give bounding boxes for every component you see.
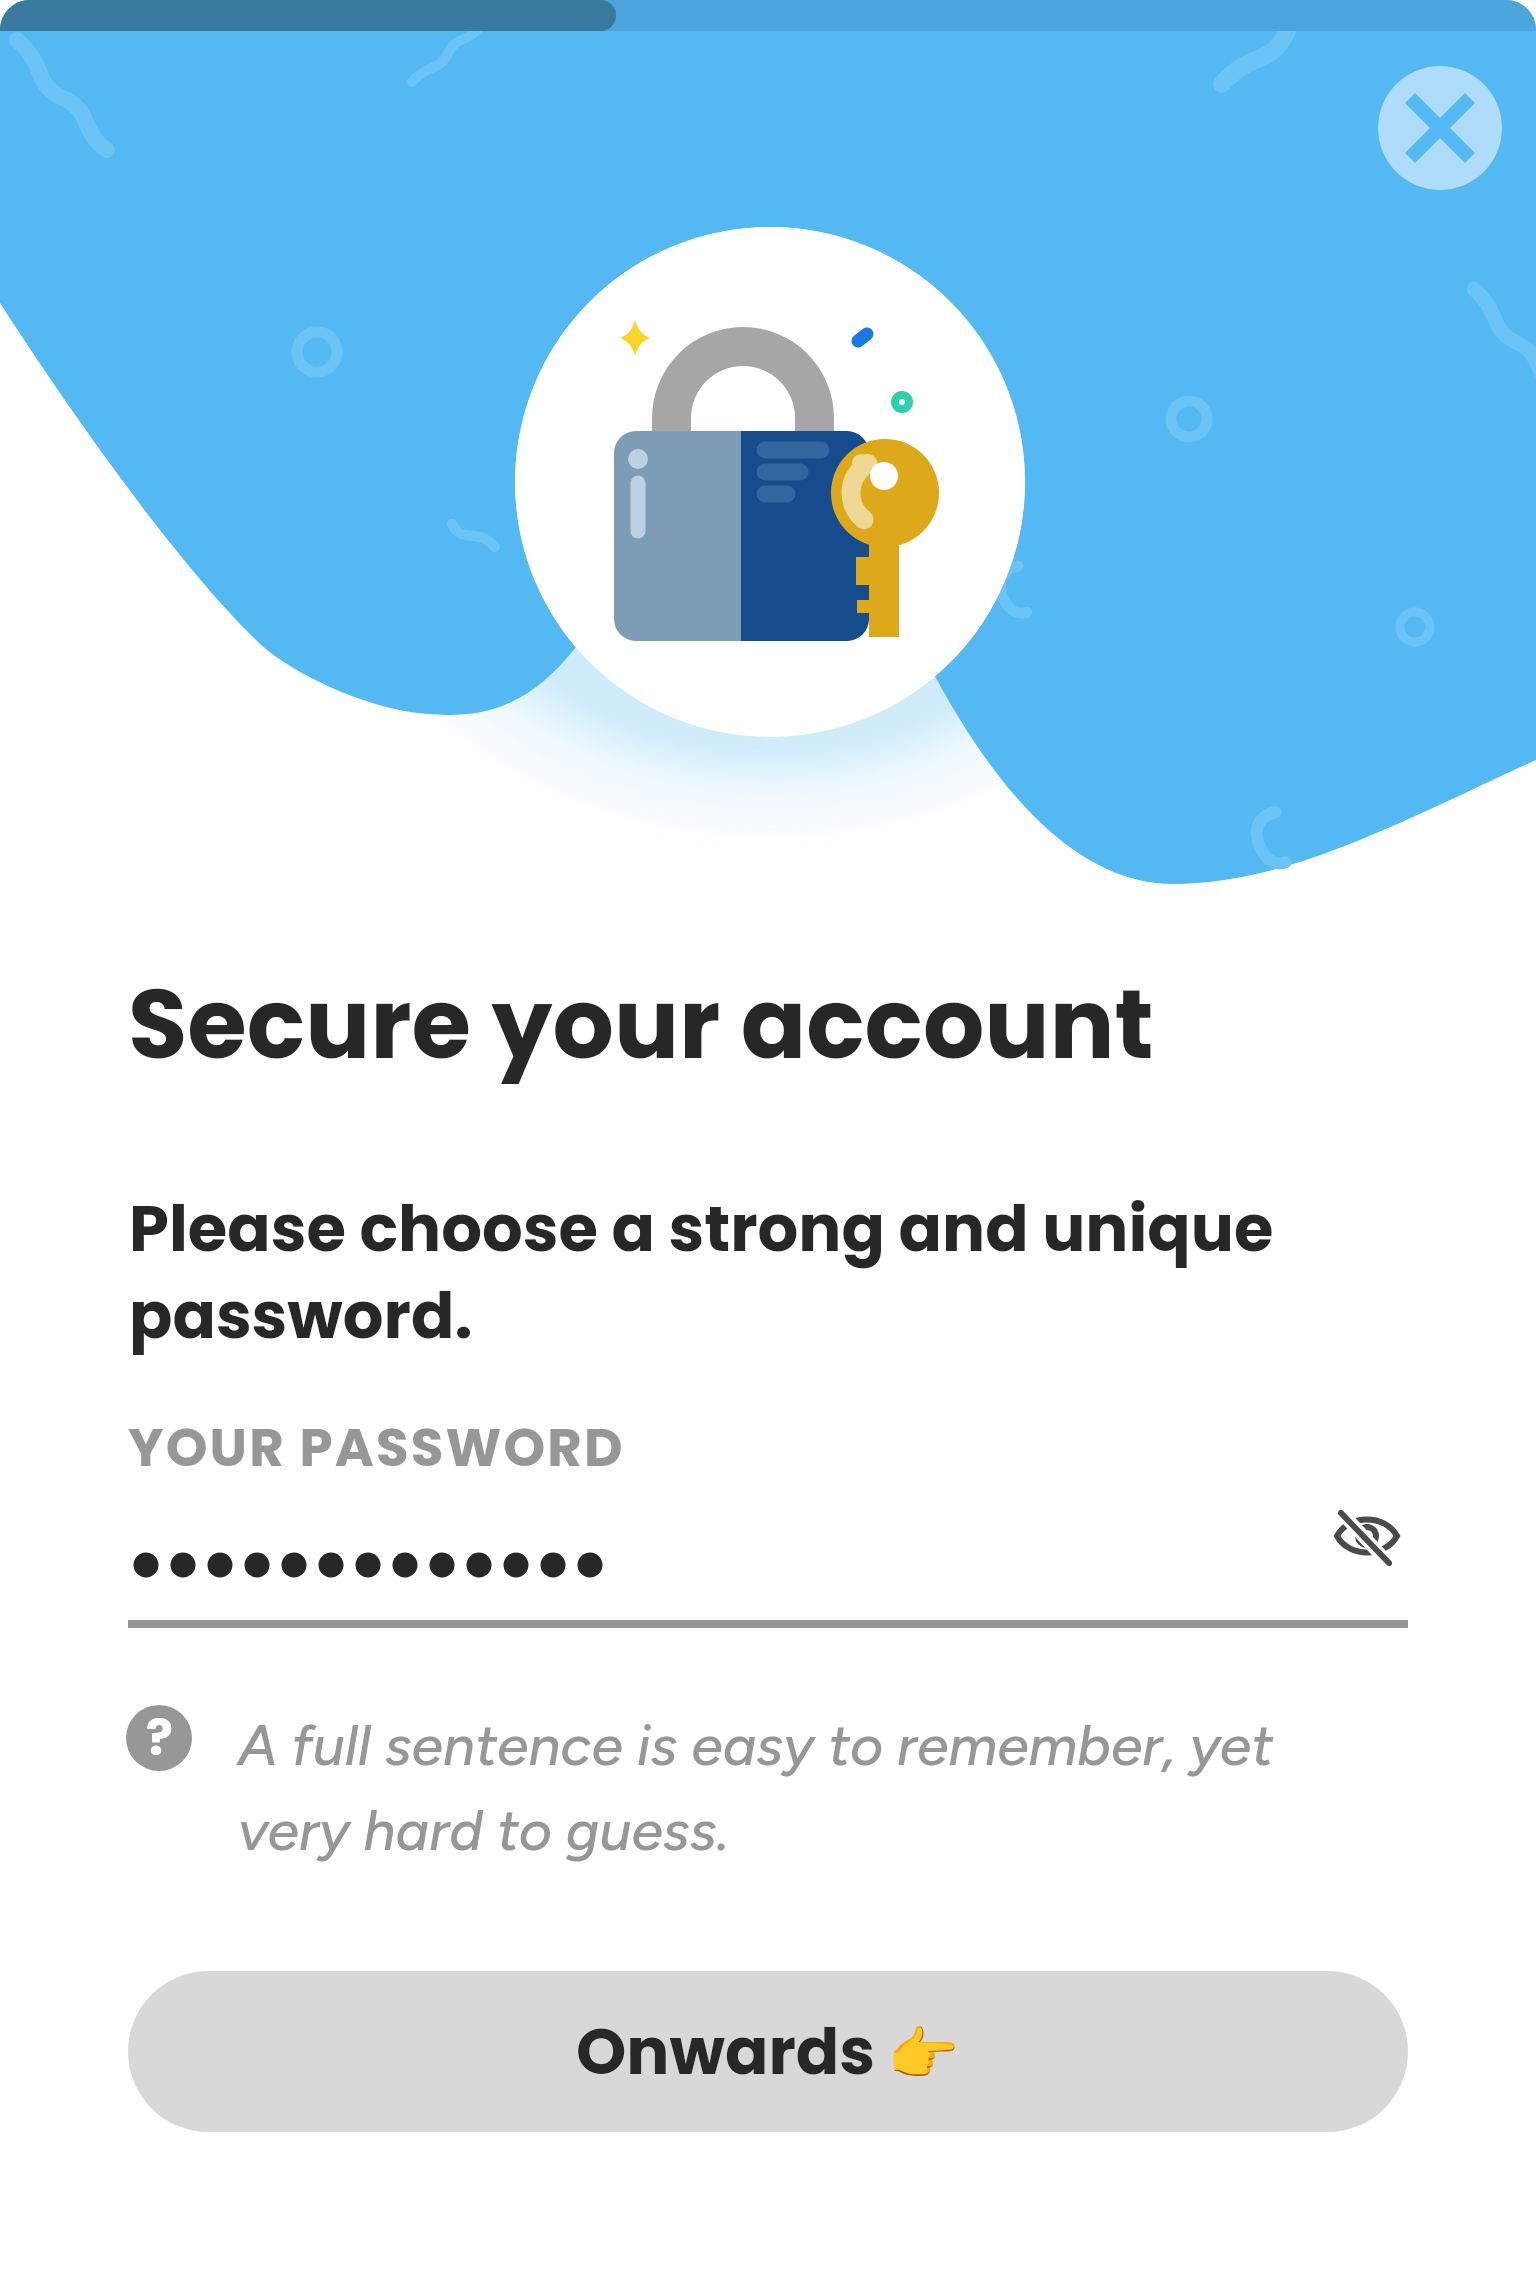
staticText: ? [146, 1703, 173, 1769]
staticText: Please choose a strong and unique passwo… [129, 1184, 1449, 1360]
staticText: Onwards [576, 2007, 875, 2097]
button[interactable]: Show password [1318, 1488, 1418, 1588]
staticText: YOUR PASSWORD [128, 1410, 625, 1484]
button[interactable]: Close [1378, 66, 1502, 190]
button[interactable]: Onwards [128, 1971, 1408, 2132]
staticText: 👉 [887, 2020, 960, 2088]
staticText: A full sentence is easy to remember, yet… [238, 1711, 1308, 1864]
staticText: Secure your account [128, 957, 1154, 1092]
